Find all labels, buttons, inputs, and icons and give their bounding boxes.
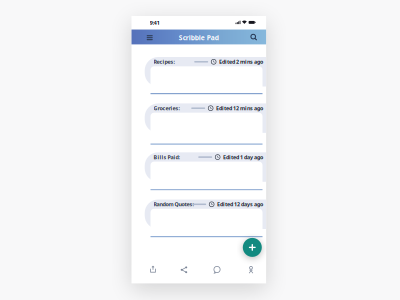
staticText: Edited 1 day ago (223, 154, 263, 161)
button[interactable] (145, 33, 155, 43)
button[interactable]: Random Quotes: (145, 199, 279, 237)
button[interactable] (243, 238, 262, 257)
button[interactable]: Recipes: (145, 57, 279, 94)
button[interactable] (180, 266, 188, 274)
button[interactable] (149, 266, 157, 274)
button[interactable]: Groceries: (145, 103, 279, 145)
staticText: 9:41 (150, 19, 160, 26)
staticText: Recipes: (153, 58, 174, 65)
staticText: Edited 2 mins ago (219, 58, 263, 65)
staticText: Edited 12 days ago (217, 201, 263, 208)
staticText: Bills Paid: (153, 154, 179, 161)
button[interactable]: Bills Paid: (145, 152, 279, 190)
button[interactable] (250, 33, 258, 41)
staticText: Edited 12 mins ago (216, 105, 263, 112)
staticText: Scribble Pad (179, 33, 219, 42)
button[interactable] (213, 266, 221, 274)
button[interactable] (247, 266, 255, 274)
staticText: Random Quotes: (153, 201, 193, 208)
staticText: Groceries: (153, 105, 179, 112)
